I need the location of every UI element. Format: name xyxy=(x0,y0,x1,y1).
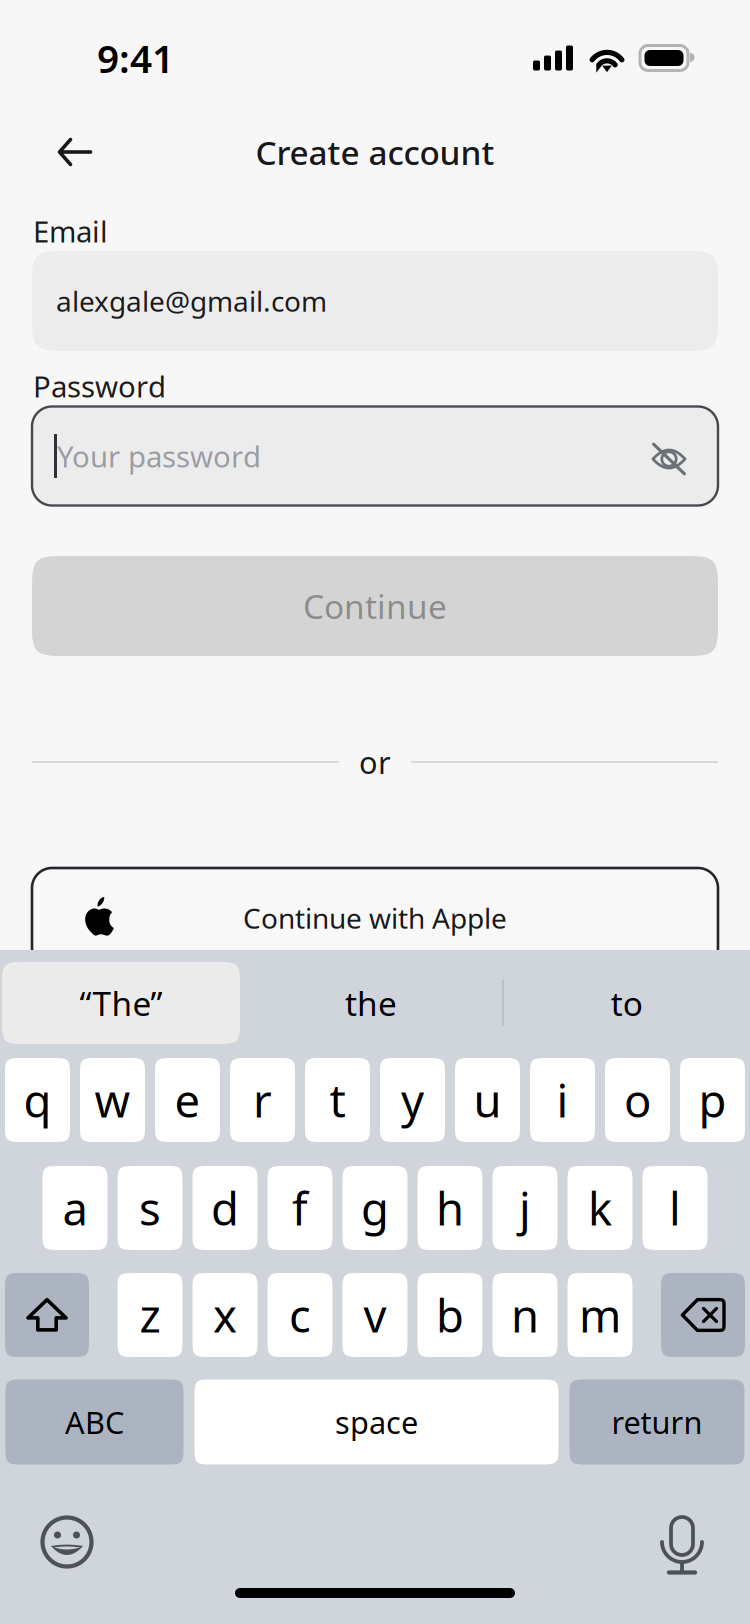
button[interactable]: Continue xyxy=(32,556,718,656)
staticText: v xyxy=(363,1285,386,1345)
button[interactable]: Show password xyxy=(651,439,687,473)
button[interactable]: e xyxy=(155,1058,220,1142)
staticText: a xyxy=(62,1178,87,1238)
staticText: n xyxy=(511,1285,539,1345)
button[interactable]: w xyxy=(80,1058,145,1142)
staticText: m xyxy=(579,1285,621,1345)
staticText: e xyxy=(174,1070,200,1130)
staticText: x xyxy=(213,1285,237,1345)
button[interactable]: c xyxy=(267,1273,332,1357)
staticText: Password xyxy=(33,366,166,405)
button[interactable]: n xyxy=(492,1273,557,1357)
button[interactable]: z xyxy=(117,1273,182,1357)
staticText: b xyxy=(436,1285,464,1345)
staticText: “The” xyxy=(79,981,162,1025)
staticText: return xyxy=(611,1402,702,1442)
button[interactable]: g xyxy=(342,1166,407,1250)
staticText: r xyxy=(253,1070,272,1130)
button[interactable]: j xyxy=(492,1166,557,1250)
button[interactable]: Back xyxy=(38,122,112,182)
button[interactable]: p xyxy=(680,1058,745,1142)
staticText: i xyxy=(556,1070,568,1130)
button[interactable]: return xyxy=(569,1379,744,1464)
button[interactable]: k xyxy=(567,1166,632,1250)
staticText: space xyxy=(335,1402,418,1442)
staticText: alexgale@gmail.com xyxy=(56,282,327,320)
staticText: the xyxy=(345,981,397,1025)
staticText: to xyxy=(611,981,643,1025)
button[interactable]: d xyxy=(192,1166,257,1250)
button[interactable]: the xyxy=(240,962,502,1044)
button[interactable]: l xyxy=(642,1166,707,1250)
staticText: d xyxy=(211,1178,239,1238)
staticText: p xyxy=(698,1070,726,1130)
button[interactable]: Continue with Apple xyxy=(32,868,718,968)
staticText: Create account xyxy=(255,130,494,174)
staticText: j xyxy=(519,1178,531,1238)
staticText: Email xyxy=(33,211,108,250)
button[interactable]: Emoji keyboard xyxy=(39,1514,95,1570)
button[interactable]: m xyxy=(567,1273,632,1357)
button[interactable]: q xyxy=(5,1058,70,1142)
button[interactable]: t xyxy=(305,1058,370,1142)
staticText: ABC xyxy=(65,1402,124,1442)
button[interactable]: r xyxy=(230,1058,295,1142)
staticText: g xyxy=(361,1178,389,1238)
button[interactable]: f xyxy=(267,1166,332,1250)
button[interactable]: y xyxy=(380,1058,445,1142)
button[interactable]: u xyxy=(455,1058,520,1142)
staticText: t xyxy=(329,1070,345,1130)
button[interactable]: Dictation xyxy=(660,1516,704,1576)
button[interactable]: o xyxy=(605,1058,670,1142)
button[interactable]: a xyxy=(42,1166,107,1250)
staticText: z xyxy=(139,1285,160,1345)
button[interactable]: ABC xyxy=(5,1379,183,1464)
button[interactable]: h xyxy=(417,1166,482,1250)
staticText: f xyxy=(292,1178,308,1238)
staticText: Continue with Apple xyxy=(243,899,507,937)
staticText: o xyxy=(624,1070,651,1130)
staticText: c xyxy=(289,1285,311,1345)
button[interactable]: x xyxy=(192,1273,257,1357)
button[interactable]: “The” xyxy=(2,962,240,1044)
staticText: Your password xyxy=(57,436,261,475)
staticText: y xyxy=(401,1070,424,1130)
staticText: u xyxy=(473,1070,501,1130)
staticText: l xyxy=(669,1178,681,1238)
staticText: k xyxy=(588,1178,612,1238)
staticText: s xyxy=(139,1178,161,1238)
button[interactable]: v xyxy=(342,1273,407,1357)
staticText: w xyxy=(94,1070,130,1130)
button[interactable]: space xyxy=(194,1379,558,1464)
button[interactable]: to xyxy=(504,962,750,1044)
button[interactable]: s xyxy=(117,1166,182,1250)
staticText: or xyxy=(359,742,391,782)
button[interactable]: b xyxy=(417,1273,482,1357)
staticText: 9:41 xyxy=(97,32,174,84)
staticText: Continue xyxy=(303,584,447,628)
staticText: h xyxy=(436,1178,464,1238)
staticText: q xyxy=(23,1070,51,1130)
button[interactable]: Delete xyxy=(661,1273,745,1357)
button[interactable]: Shift xyxy=(5,1273,89,1357)
button[interactable]: i xyxy=(530,1058,595,1142)
